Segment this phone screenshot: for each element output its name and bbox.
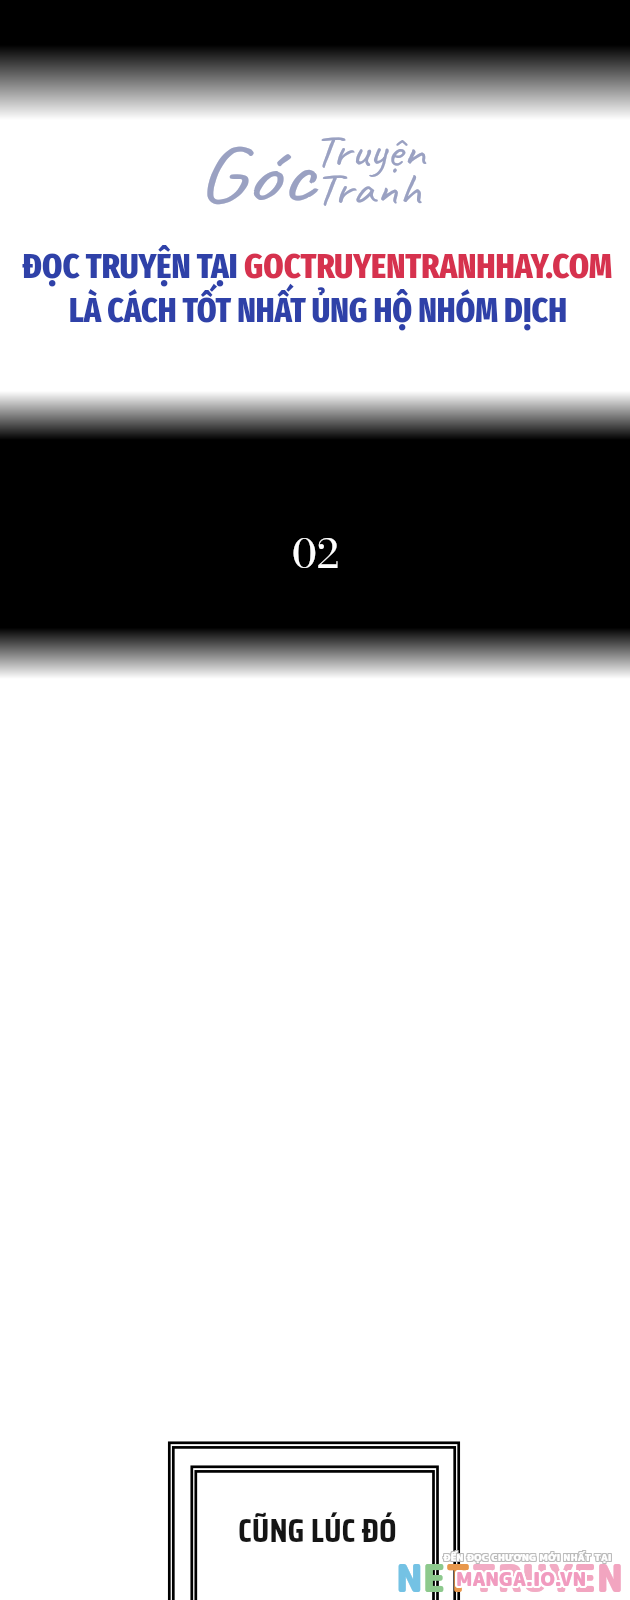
staticText: ĐỌC TRUYỆN TẠI — [22, 245, 244, 287]
staticText: GOCTRUYENTRANHHAY.COM — [244, 245, 613, 287]
staticText: Truyện — [313, 123, 426, 180]
staticText: Góc — [196, 124, 315, 225]
staticText: LÀ CÁCH TỐT NHẤT ỦNG HỘ NHÓM DỊCH — [69, 289, 567, 331]
staticText: 02 — [292, 523, 339, 584]
staticText: Tranh — [314, 161, 422, 218]
button[interactable]: Góc — [0, 118, 630, 333]
button[interactable]: NetTruyen - manga.io.vn — [392, 1542, 630, 1600]
staticText: CŨNG LÚC ĐÓ — [238, 1505, 397, 1557]
